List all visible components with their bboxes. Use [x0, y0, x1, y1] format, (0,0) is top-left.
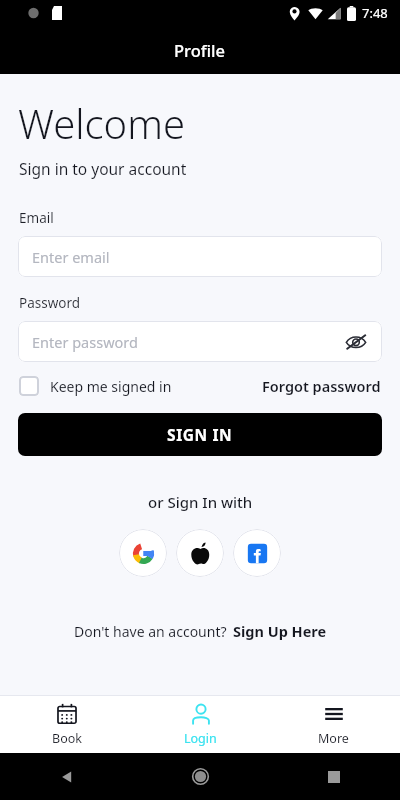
staticText: Enter email [32, 247, 110, 267]
staticText: Don't have an account? [74, 622, 227, 641]
staticText: Welcome [18, 96, 185, 150]
button[interactable]: Login [134, 696, 267, 753]
button[interactable]: Keep me signed in [19, 376, 172, 396]
button[interactable]: Enter password [18, 321, 382, 362]
staticText: More [318, 730, 349, 747]
staticText: Sign Up Here [233, 621, 327, 641]
button[interactable]: More [267, 696, 400, 753]
staticText: SIGN IN [167, 424, 233, 445]
staticText: Enter password [32, 332, 138, 352]
staticText: or Sign In with [148, 492, 253, 512]
button[interactable]: Forgot password [262, 376, 381, 396]
staticText: Book [52, 730, 82, 747]
button[interactable]: Sign Up Here [233, 621, 327, 641]
staticText: Login [184, 730, 217, 747]
button[interactable]: SIGN IN [18, 413, 382, 456]
button[interactable]: Show password [342, 328, 370, 356]
staticText: Sign in to your account [19, 158, 187, 179]
button[interactable]: Sign in with Facebook [233, 529, 281, 577]
button[interactable]: Book [0, 696, 134, 753]
staticText: Keep me signed in [50, 377, 172, 396]
staticText: Password [19, 294, 81, 312]
button[interactable]: Sign in with Google [119, 529, 167, 577]
staticText: 7:48 [362, 4, 388, 22]
button[interactable]: Enter email [18, 236, 382, 277]
staticText: Profile [174, 39, 226, 61]
staticText: Email [19, 209, 54, 227]
button[interactable]: Sign in with Apple [176, 529, 224, 577]
staticText: Forgot password [262, 376, 381, 396]
